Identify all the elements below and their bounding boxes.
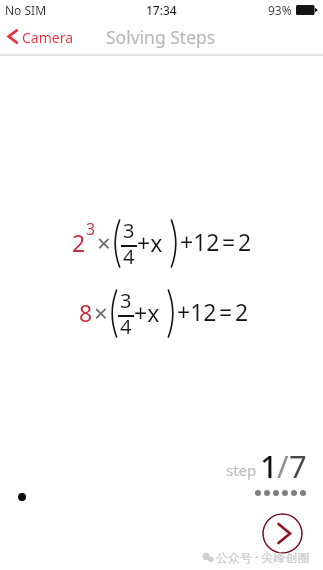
staticText: +12 [177, 296, 217, 327]
staticText: No SIM [5, 2, 47, 18]
staticText: 3 [120, 287, 132, 314]
staticText: step [226, 460, 257, 480]
staticText: 2 [238, 226, 252, 257]
staticText: 17:34 [146, 2, 177, 18]
staticText: Camera [22, 28, 74, 47]
staticText: = [222, 226, 236, 257]
staticText: 1 [260, 445, 278, 487]
staticText: 公众号 · 尖峰创圈 [216, 549, 310, 565]
staticText: 3 [123, 217, 135, 244]
staticText: 93% [268, 2, 292, 18]
staticText: 2 [72, 227, 86, 258]
staticText: / [277, 445, 289, 487]
staticText: Solving Steps [106, 25, 216, 49]
staticText: 3 [86, 218, 96, 240]
staticText: 4 [123, 243, 135, 270]
staticText: 8 [79, 297, 93, 328]
button[interactable]: Camera [0, 23, 84, 52]
staticText: × [94, 296, 108, 329]
button[interactable]: Next step [262, 513, 303, 554]
staticText: = [219, 296, 233, 327]
staticText: × [97, 226, 111, 259]
staticText: 7 [289, 445, 307, 487]
staticText: 2 [235, 296, 249, 327]
staticText: +x [134, 297, 160, 328]
staticText: 4 [120, 313, 132, 340]
staticText: +x [137, 227, 163, 258]
staticText: +12 [180, 226, 220, 257]
